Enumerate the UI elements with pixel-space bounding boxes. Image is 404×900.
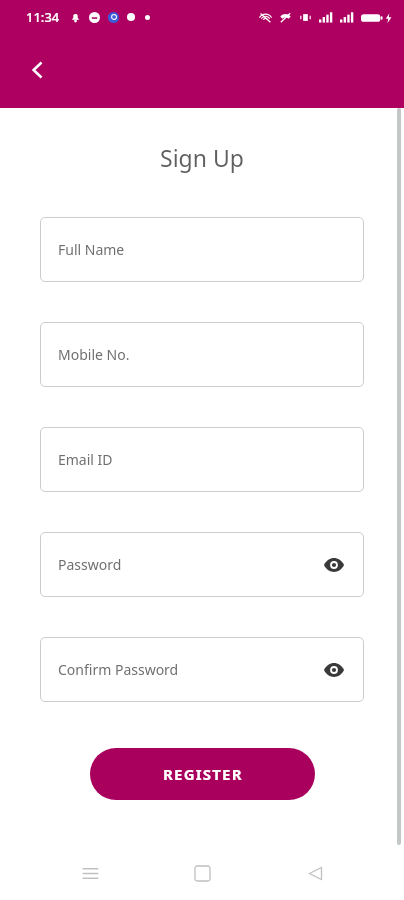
staticText: Mobile No. — [58, 345, 130, 364]
staticText: Email ID — [58, 450, 113, 469]
staticText: Confirm Password — [58, 660, 179, 679]
staticText: REGISTER — [163, 764, 243, 784]
button[interactable]: Full Name — [40, 217, 364, 282]
button[interactable]: Toggle password visibility — [314, 545, 354, 585]
button[interactable]: Home — [179, 850, 225, 896]
button[interactable]: Back — [292, 850, 338, 896]
button[interactable]: Toggle password visibility — [314, 650, 354, 690]
staticText: Sign Up — [160, 142, 244, 173]
button[interactable]: REGISTER — [90, 748, 315, 800]
staticText: Full Name — [58, 240, 125, 259]
button[interactable]: Recent apps — [67, 850, 113, 896]
button[interactable]: Email ID — [40, 427, 364, 492]
button[interactable]: Confirm Password — [40, 637, 364, 702]
button[interactable]: Back — [16, 48, 60, 92]
staticText: 11:34 — [26, 8, 60, 26]
staticText: Password — [58, 555, 122, 574]
button[interactable]: Password — [40, 532, 364, 597]
button[interactable]: Mobile No. — [40, 322, 364, 387]
